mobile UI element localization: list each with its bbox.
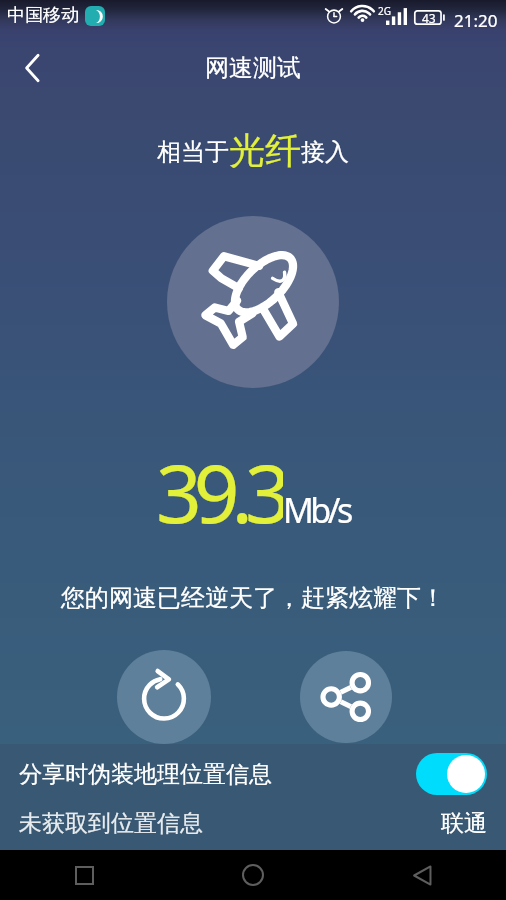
- staticText: 21:20: [454, 9, 498, 32]
- staticText: 您的网速已经逆天了，赶紧炫耀下！: [61, 583, 445, 613]
- staticText: 39.3: [156, 437, 283, 533]
- button[interactable]: Back: [338, 850, 506, 900]
- staticText: 2G: [378, 4, 391, 18]
- staticText: 43: [422, 10, 436, 25]
- staticText: 相当于: [157, 137, 229, 167]
- staticText: 联通: [441, 809, 487, 838]
- staticText: 网速测试: [205, 53, 301, 83]
- staticText: 接入: [301, 137, 349, 167]
- staticText: 光纤: [229, 128, 301, 172]
- staticText: 未获取到位置信息: [19, 809, 203, 838]
- button[interactable]: Home: [168, 850, 338, 900]
- staticText: 中国移动: [7, 4, 79, 27]
- button[interactable]: 分享时伪装地理位置信息: [0, 750, 506, 798]
- staticText: Mb/s: [283, 487, 350, 533]
- button[interactable]: Retest: [117, 650, 211, 744]
- button[interactable]: Back: [4, 30, 62, 106]
- button[interactable]: Share: [300, 651, 392, 743]
- button[interactable]: Recent apps: [0, 850, 168, 900]
- staticText: 分享时伪装地理位置信息: [19, 760, 272, 789]
